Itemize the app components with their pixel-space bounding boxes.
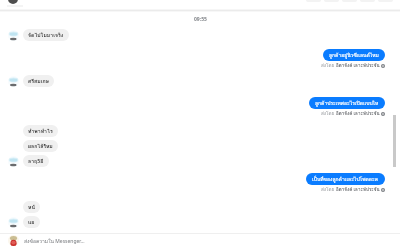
staticText: ส่งข้อความใน Messenger... bbox=[24, 237, 85, 245]
staticText: ส่งโดย bbox=[321, 186, 336, 193]
staticText: 09:55 bbox=[194, 16, 207, 23]
staticText: ศรีสมเกษ bbox=[28, 77, 49, 85]
button[interactable]: ลูกค้าประเทศอะไรเปิดแบบไห bbox=[309, 97, 385, 109]
button[interactable]: แย bbox=[23, 216, 40, 228]
staticText: เป็นที่ของลูกค้าเเละไปโพดดะค bbox=[312, 175, 379, 183]
button[interactable]: Your profile bbox=[8, 235, 400, 246]
button[interactable]: ผลกไล้ใหม bbox=[23, 140, 58, 152]
staticText: จัดไปโมมาเจริง bbox=[28, 31, 64, 39]
staticText: ส่งโดย bbox=[321, 62, 336, 69]
button[interactable]: เป็นที่ของลูกค้าเเละไปโพดดะค bbox=[306, 173, 385, 185]
staticText: ลาฤ5ยี bbox=[28, 157, 44, 165]
staticText: ลูกค้าประเทศอะไรเปิดแบบไห bbox=[315, 99, 379, 107]
staticText: อิตาจังค์ เลาะห์ประจัน bbox=[336, 62, 380, 69]
staticText: อิตาจังค์ เลาะห์ประจัน bbox=[336, 186, 380, 193]
button[interactable]: ศรีสมเกษ bbox=[23, 75, 54, 87]
button[interactable]: ลูกค้าอยู่นิวซีแลนด์ไหม bbox=[323, 49, 385, 61]
other: Your profile bbox=[8, 235, 19, 246]
staticText: อิตาจังค์ เลาะห์ประจัน bbox=[336, 110, 380, 117]
button[interactable]: จัดไปโมมาเจริง bbox=[23, 29, 69, 41]
staticText: ผลกไล้ใหม bbox=[28, 142, 53, 150]
staticText: ลูกค้าอยู่นิวซีแลนด์ไหม bbox=[329, 51, 379, 59]
staticText: แย bbox=[28, 218, 35, 226]
staticText: หนั bbox=[28, 203, 35, 211]
button[interactable]: ลาฤ5ยี bbox=[23, 155, 49, 167]
staticText: ทำพาทำไร bbox=[28, 127, 53, 135]
button[interactable]: Conversation profile bbox=[8, 0, 18, 4]
button[interactable]: ทำพาทำไร bbox=[23, 125, 58, 137]
button[interactable]: หนั bbox=[23, 201, 40, 213]
staticText: ส่งโดย bbox=[321, 110, 336, 117]
